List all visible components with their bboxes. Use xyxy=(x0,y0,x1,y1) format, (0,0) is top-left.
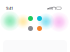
staticText: 9:41 xyxy=(6,5,13,11)
